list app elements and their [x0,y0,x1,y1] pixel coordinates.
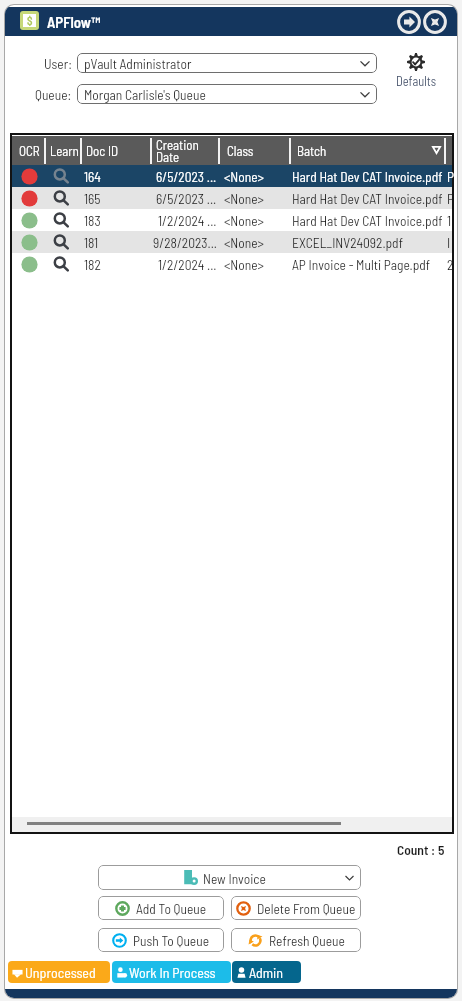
staticText: 1/2/2024 ... [158,256,217,272]
staticText: pVault Administrator [84,55,192,71]
staticText: 165 [84,190,101,206]
staticText: 2 [447,256,454,272]
button[interactable]: Go [396,9,422,35]
staticText: <None> [224,212,264,228]
button[interactable]: New Invoice [98,865,361,890]
staticText: 181 [84,234,99,250]
staticText: P [447,168,454,184]
staticText: 1 [447,212,452,228]
button[interactable]: Unprocessed [8,961,110,983]
staticText: 182 [84,256,101,272]
staticText: 6/5/2023 ... [156,168,217,184]
staticText: 1/2/2024 ... [158,212,217,228]
button[interactable]: 165 [12,187,452,209]
staticText: Class [227,143,254,159]
staticText: Work In Process [129,964,216,981]
staticText: Refresh Queue [269,932,345,948]
staticText: AP Invoice - Multi Page.pdf [292,256,431,272]
staticText: <None> [224,234,264,250]
button[interactable]: pVault Administrator [77,53,377,73]
staticText: Add To Queue [136,900,207,916]
staticText: Doc ID [86,143,119,159]
staticText: Creation Date [156,137,199,165]
staticText: Delete From Queue [257,900,356,916]
staticText: Admin [249,964,284,981]
button[interactable]: 182 [12,253,452,275]
staticText: Hard Hat Dev CAT Invoice.pdf [292,190,443,206]
button[interactable]: 183 [12,209,452,231]
button[interactable]: Defaults [393,53,439,88]
staticText: $ [27,14,33,27]
button[interactable]: Morgan Carlisle's Queue [77,84,377,104]
staticText: I [447,234,451,250]
staticText: <None> [224,256,264,272]
staticText: Count : 5 [397,841,445,857]
staticText: Defaults [396,73,437,88]
button[interactable]: Add To Queue [98,896,224,920]
staticText: Morgan Carlisle's Queue [84,86,206,102]
staticText: Unprocessed [25,964,96,981]
staticText: 183 [84,212,101,228]
staticText: Batch [297,143,327,159]
button[interactable]: Push To Queue [98,928,224,952]
staticText: User: [44,55,72,71]
staticText: OCR [19,143,40,159]
button[interactable]: Close [422,9,448,35]
staticText: 6/5/2023 ... [156,190,217,206]
button[interactable]: Delete From Queue [231,896,361,920]
button[interactable]: 164 [12,165,452,187]
staticText: Queue: [35,86,72,102]
button[interactable]: Admin [232,961,301,983]
button[interactable]: Refresh Queue [231,928,361,952]
staticText: EXCEL_INV24092.pdf [292,234,403,250]
button[interactable]: Work In Process [112,961,231,983]
staticText: New Invoice [203,870,266,886]
staticText: 9/28/2023... [153,234,217,250]
staticText: APFlow™ [47,13,100,31]
staticText: Hard Hat Dev CAT Invoice.pdf [292,212,443,228]
staticText: P [447,190,454,206]
staticText: <None> [224,190,264,206]
staticText: <None> [224,168,264,184]
staticText: Hard Hat Dev CAT Invoice.pdf [292,168,443,184]
button[interactable]: 181 [12,231,452,253]
staticText: 164 [84,168,101,184]
staticText: Learn [50,143,79,159]
staticText: Push To Queue [133,932,210,948]
